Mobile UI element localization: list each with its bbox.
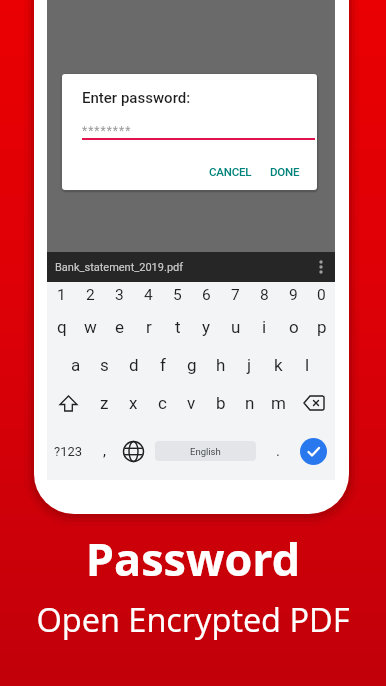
staticText: h [216, 355, 226, 375]
staticText: i [262, 317, 267, 337]
button[interactable] [313, 257, 329, 277]
staticText: n [245, 393, 255, 413]
staticText: 9 [289, 286, 298, 304]
button[interactable]: 1 [47, 282, 76, 308]
staticText: z [100, 393, 109, 413]
button[interactable]: h [206, 346, 235, 384]
staticText: Password [0, 528, 386, 589]
button[interactable]: j [235, 346, 264, 384]
staticText: s [100, 355, 109, 375]
staticText: a [71, 355, 81, 375]
staticText: v [187, 393, 196, 413]
button[interactable]: d [119, 346, 148, 384]
staticText: 4 [144, 286, 153, 304]
button[interactable]: CANCEL [209, 165, 252, 178]
staticText: ******** [82, 124, 132, 138]
button[interactable] [119, 422, 148, 480]
staticText: ?123 [54, 444, 83, 459]
staticText: . [276, 442, 280, 460]
button[interactable]: i [250, 308, 279, 346]
button[interactable]: u [221, 308, 250, 346]
button[interactable]: y [192, 308, 221, 346]
staticText: u [231, 317, 241, 337]
button[interactable] [47, 384, 90, 422]
staticText: w [84, 317, 97, 337]
button[interactable]: 8 [250, 282, 279, 308]
button[interactable]: . [263, 422, 292, 480]
staticText: r [146, 317, 152, 337]
button[interactable]: r [134, 308, 163, 346]
button[interactable]: b [206, 384, 235, 422]
staticText: l [305, 355, 310, 375]
button[interactable]: x [119, 384, 148, 422]
button[interactable]: v [177, 384, 206, 422]
button[interactable]: 5 [163, 282, 192, 308]
button[interactable]: 4 [134, 282, 163, 308]
staticText: j [247, 355, 252, 375]
staticText: DONE [270, 165, 300, 178]
staticText: 5 [173, 286, 182, 304]
button[interactable]: k [264, 346, 293, 384]
staticText: 1 [57, 286, 66, 304]
button[interactable]: s [90, 346, 119, 384]
staticText: 7 [231, 286, 240, 304]
button[interactable]: , [90, 422, 119, 480]
staticText: m [271, 393, 286, 413]
staticText: 2 [86, 286, 95, 304]
button[interactable]: p [308, 308, 335, 346]
button[interactable]: t [163, 308, 192, 346]
button[interactable]: 3 [105, 282, 134, 308]
button[interactable]: 2 [76, 282, 105, 308]
staticText: q [57, 317, 67, 337]
button[interactable]: g [177, 346, 206, 384]
staticText: d [129, 355, 139, 375]
button[interactable]: w [76, 308, 105, 346]
staticText: 6 [202, 286, 211, 304]
staticText: b [216, 393, 226, 413]
staticText: , [103, 442, 106, 460]
staticText: English [190, 446, 221, 457]
staticText: x [129, 393, 138, 413]
staticText: 0 [317, 286, 326, 304]
button[interactable]: o [279, 308, 308, 346]
staticText: CANCEL [209, 165, 252, 178]
button[interactable]: z [90, 384, 119, 422]
staticText: y [202, 317, 211, 337]
button[interactable]: q [47, 308, 76, 346]
button[interactable]: 7 [221, 282, 250, 308]
button[interactable] [293, 384, 335, 422]
button[interactable] [292, 422, 335, 480]
staticText: t [175, 317, 181, 337]
button[interactable]: ?123 [47, 422, 90, 480]
staticText: g [187, 355, 197, 375]
button[interactable]: m [264, 384, 293, 422]
button[interactable]: 9 [279, 282, 308, 308]
button[interactable]: f [148, 346, 177, 384]
button[interactable]: l [293, 346, 322, 384]
staticText: 3 [115, 286, 124, 304]
staticText: o [289, 317, 299, 337]
button[interactable]: DONE [270, 165, 300, 178]
button[interactable]: n [235, 384, 264, 422]
staticText: Open Encrypted PDF [0, 597, 386, 641]
button[interactable]: e [105, 308, 134, 346]
staticText: e [115, 317, 125, 337]
button[interactable]: a [61, 346, 90, 384]
button[interactable]: English [148, 422, 263, 480]
staticText: c [158, 393, 167, 413]
staticText: f [160, 355, 166, 375]
staticText: Enter password: [82, 89, 191, 107]
button[interactable]: c [148, 384, 177, 422]
staticText: k [274, 355, 283, 375]
staticText: 8 [260, 286, 269, 304]
button[interactable]: 6 [192, 282, 221, 308]
staticText: p [317, 317, 327, 337]
button[interactable]: 0 [308, 282, 335, 308]
staticText: Bank_statement_2019.pdf [55, 261, 184, 274]
